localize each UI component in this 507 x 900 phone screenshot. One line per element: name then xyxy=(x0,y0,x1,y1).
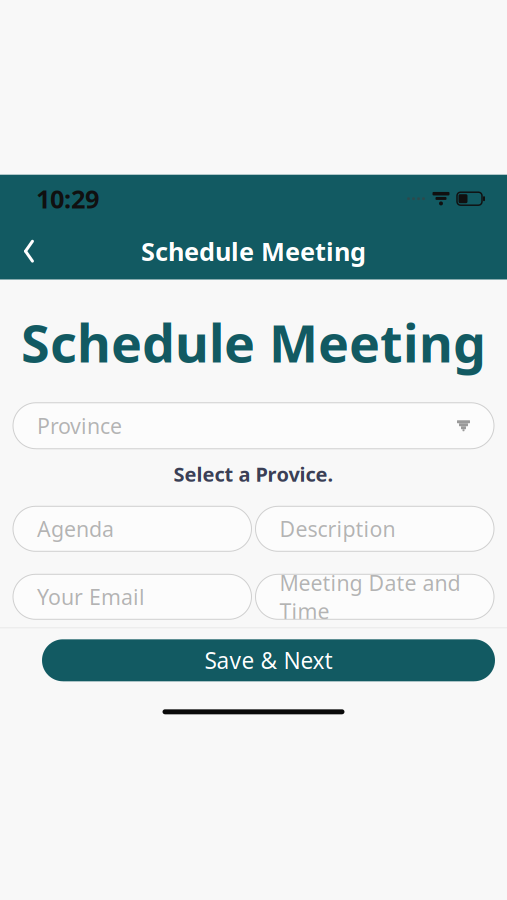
staticText: Schedule Meeting xyxy=(141,234,366,268)
button[interactable]: Province xyxy=(13,403,494,449)
staticText: Select a Provice. xyxy=(173,461,333,487)
staticText: Agenda xyxy=(37,515,114,543)
staticText: Province xyxy=(37,412,122,440)
button[interactable]: Back xyxy=(6,228,52,274)
staticText: Save & Next xyxy=(204,645,332,675)
staticText: Description xyxy=(279,515,395,543)
staticText: Schedule Meeting xyxy=(21,308,486,377)
staticText: Your Email xyxy=(37,583,145,611)
staticText: 10:29 xyxy=(36,182,99,215)
button[interactable]: Save & Next xyxy=(42,639,495,681)
staticText: Meeting Date and Time xyxy=(279,568,460,625)
